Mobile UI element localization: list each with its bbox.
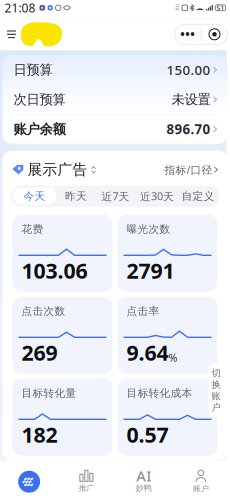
staticText: 切 (211, 367, 220, 379)
staticText: 花费 (21, 223, 43, 236)
staticText: 103.06 (21, 256, 87, 285)
button[interactable]: 展示广告 (12, 161, 95, 179)
staticText: 账 (211, 390, 220, 402)
staticText: 妙鸭 (136, 483, 152, 493)
staticText: AI (136, 466, 151, 486)
staticText: 目标转化量 (21, 387, 76, 400)
button[interactable]: Close (201, 24, 227, 44)
button[interactable]: 点击率 (117, 297, 217, 374)
staticText: % (168, 350, 177, 365)
button[interactable]: Menu (2, 25, 20, 43)
staticText: 账户余额 (13, 121, 65, 137)
button[interactable]: 近30天 (135, 188, 178, 205)
button[interactable]: 账户 (172, 470, 229, 494)
button[interactable]: More (175, 24, 201, 44)
button[interactable]: 目标转化量 (12, 379, 112, 456)
staticText: 换 (211, 379, 220, 390)
staticText: 150.00 (166, 61, 210, 79)
button[interactable]: Home (0, 471, 58, 493)
staticText: ⦙⦙ (175, 4, 179, 12)
staticText: 896.70 (166, 120, 210, 138)
button[interactable]: 账户余额 (2, 115, 227, 144)
staticText: 指标/口径 (164, 163, 212, 177)
button[interactable]: 切换账户 (208, 363, 223, 417)
button[interactable]: 推广 (58, 470, 115, 493)
staticText: 次日预算 (13, 91, 65, 108)
staticText: 0.57 (126, 420, 168, 449)
button[interactable]: AI (115, 470, 172, 493)
staticText: 展示广告 (27, 161, 87, 179)
button[interactable]: 目标转化成本 (117, 379, 217, 456)
button[interactable]: 指标/口径 (164, 163, 217, 177)
button[interactable]: 昨天 (56, 188, 95, 205)
button[interactable]: 曝光次数 (117, 215, 217, 292)
staticText: 点击次数 (21, 305, 65, 318)
staticText: ••• (180, 26, 195, 42)
button[interactable]: 近7天 (95, 188, 135, 205)
staticText: 点击率 (126, 305, 159, 318)
staticText: 户 (211, 402, 220, 413)
staticText: 今天 (23, 190, 45, 203)
staticText: 21:08 (4, 0, 35, 16)
staticText: 182 (21, 420, 57, 449)
staticText: 269 (21, 338, 57, 367)
button[interactable]: 次日预算 (2, 85, 227, 114)
staticText: 昨天 (65, 190, 87, 203)
staticText: 51 (216, 3, 224, 12)
staticText: 账户 (193, 484, 209, 494)
button[interactable]: 自定义 (178, 188, 217, 205)
button[interactable]: 花费 (12, 215, 112, 292)
staticText: 9.64 (126, 338, 168, 367)
staticText: 自定义 (181, 190, 214, 203)
staticText: 曝光次数 (126, 223, 170, 236)
button[interactable]: 今天 (12, 188, 56, 205)
staticText: 推广 (78, 483, 94, 493)
button[interactable]: 点击次数 (12, 297, 112, 374)
staticText: 未设置 (171, 91, 210, 108)
staticText: 日预算 (13, 62, 52, 78)
staticText: 目标转化成本 (126, 387, 192, 400)
staticText: 2791 (126, 256, 174, 285)
button[interactable]: 日预算 (2, 55, 227, 84)
staticText: 近30天 (140, 189, 174, 203)
staticText: 近7天 (101, 189, 129, 203)
